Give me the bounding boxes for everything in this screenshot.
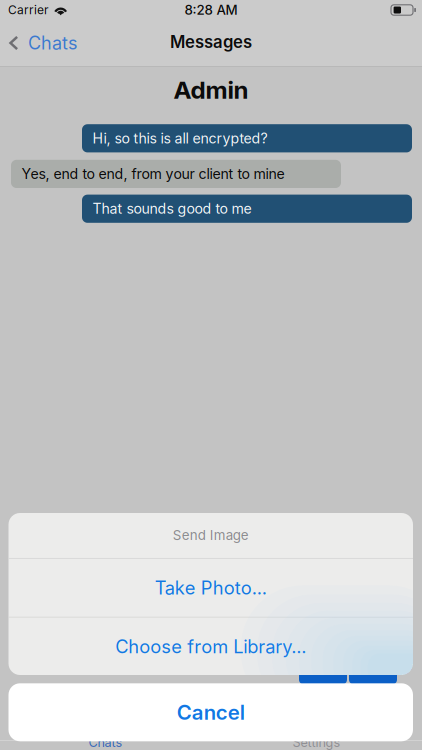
staticText: Settings: [292, 735, 340, 750]
staticText: Admin: [173, 75, 248, 105]
staticText: Send Image: [173, 527, 249, 543]
staticText: Cancel: [177, 700, 245, 725]
button[interactable]: Take Photo...: [8, 559, 413, 617]
staticText: Yes, end to end, from your client to min…: [21, 165, 284, 182]
staticText: Take Photo...: [155, 577, 267, 599]
button[interactable]: Choose from Library...: [8, 618, 413, 676]
button[interactable]: Chats: [0, 741, 211, 750]
staticText: Hi, so this is all encrypted?: [92, 130, 267, 147]
staticText: That sounds good to me: [92, 200, 251, 217]
button[interactable]: Chats: [0, 20, 88, 66]
staticText: Messages: [170, 32, 252, 52]
button[interactable]: Camera: [299, 669, 347, 685]
staticText: Choose from Library...: [115, 635, 306, 658]
staticText: 8:28 AM: [184, 2, 237, 18]
button[interactable]: Settings: [211, 741, 422, 750]
staticText: Carrier: [8, 3, 49, 17]
button[interactable]: Cancel: [8, 683, 413, 741]
staticText: Chats: [88, 735, 122, 750]
button[interactable]: Photo Library: [349, 669, 397, 685]
staticText: Chats: [28, 32, 78, 54]
